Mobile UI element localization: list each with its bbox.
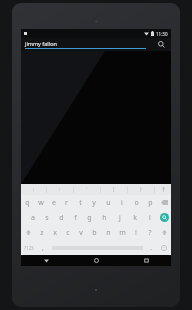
- staticText: t: [79, 198, 82, 208]
- staticText: e: [52, 198, 56, 208]
- staticText: x: [53, 228, 57, 238]
- button[interactable]: i: [115, 195, 129, 210]
- staticText: ,: [42, 243, 44, 253]
- staticText: h: [102, 213, 107, 223]
- staticText: i: [121, 198, 123, 208]
- button[interactable]: y: [87, 195, 101, 210]
- button[interactable]: ?: [143, 225, 157, 240]
- button[interactable]: Shift: [157, 225, 171, 240]
- staticText: ;: [33, 186, 35, 193]
- button[interactable]: .: [145, 240, 157, 255]
- button[interactable]: Emoji: [157, 240, 171, 255]
- staticText: y: [92, 198, 96, 208]
- button[interactable]: n: [101, 225, 115, 240]
- staticText: r: [65, 198, 68, 208]
- button[interactable]: Search: [157, 210, 171, 225]
- staticText: u: [106, 198, 111, 208]
- staticText: b: [92, 228, 97, 238]
- button[interactable]: s: [40, 210, 54, 225]
- button[interactable]: c: [61, 225, 74, 240]
- button[interactable]: f: [68, 210, 82, 225]
- button[interactable]: Shift: [21, 225, 35, 240]
- button[interactable]: Search: [156, 39, 167, 50]
- button[interactable]: !: [129, 225, 143, 240]
- button[interactable]: d: [54, 210, 68, 225]
- button[interactable]: w: [34, 195, 47, 210]
- button[interactable]: o: [129, 195, 143, 210]
- staticText: l: [149, 213, 151, 223]
- staticText: s: [45, 213, 49, 223]
- button[interactable]: v: [74, 225, 87, 240]
- staticText: 11:30: [156, 31, 168, 37]
- button[interactable]: Home: [71, 255, 121, 266]
- staticText: ): [140, 186, 142, 193]
- button[interactable]: (: [101, 184, 127, 195]
- button[interactable]: ,: [37, 240, 49, 255]
- staticText: o: [134, 198, 139, 208]
- staticText: ?: [148, 228, 152, 238]
- button[interactable]: h: [97, 210, 112, 225]
- staticText: ?123: [24, 245, 34, 251]
- staticText: p: [148, 198, 153, 208]
- staticText: k: [133, 213, 137, 223]
- staticText: w: [38, 198, 44, 208]
- button[interactable]: ?123: [21, 240, 37, 255]
- staticText: g: [87, 213, 92, 223]
- button[interactable]: p: [143, 195, 157, 210]
- button[interactable]: m: [115, 225, 129, 240]
- button[interactable]: jimmy fallon: [25, 40, 146, 49]
- staticText: f: [74, 213, 77, 223]
- staticText: .: [150, 243, 152, 253]
- staticText: n: [106, 228, 111, 238]
- staticText: !: [135, 228, 137, 238]
- staticText: z: [40, 228, 44, 238]
- button[interactable]: b: [87, 225, 101, 240]
- staticText: jimmy fallon: [25, 40, 57, 47]
- staticText: a: [31, 213, 35, 223]
- staticText: m: [119, 228, 126, 238]
- button[interactable]: x: [48, 225, 61, 240]
- button[interactable]: j: [112, 210, 127, 225]
- staticText: d: [59, 213, 64, 223]
- button[interactable]: k: [127, 210, 142, 225]
- button[interactable]: l: [142, 210, 157, 225]
- staticText: (: [113, 186, 115, 193]
- button[interactable]: q: [21, 195, 34, 210]
- staticText: ': [86, 186, 88, 193]
- button[interactable]: t: [73, 195, 87, 210]
- button[interactable]: r: [60, 195, 73, 210]
- button[interactable]: g: [82, 210, 97, 225]
- button[interactable]: e: [47, 195, 60, 210]
- button[interactable]: Back: [21, 255, 71, 266]
- button[interactable]: Recent apps: [121, 255, 171, 266]
- staticText: v: [79, 228, 83, 238]
- button[interactable]: ): [128, 184, 154, 195]
- staticText: q: [25, 198, 30, 208]
- button[interactable]: z: [35, 225, 48, 240]
- staticText: :: [59, 186, 61, 193]
- button[interactable]: Space: [49, 240, 145, 255]
- button[interactable]: u: [101, 195, 115, 210]
- button[interactable]: Voice input: [155, 184, 171, 195]
- button[interactable]: a: [26, 210, 40, 225]
- staticText: j: [119, 213, 121, 223]
- staticText: c: [66, 228, 70, 238]
- button[interactable]: Backspace: [157, 195, 171, 210]
